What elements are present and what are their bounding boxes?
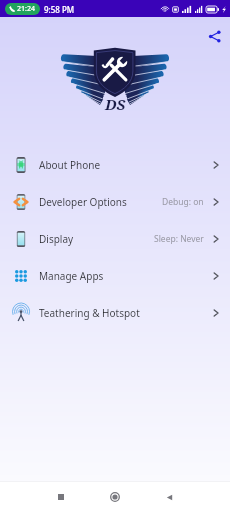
button[interactable]: About Phone xyxy=(0,146,230,183)
button[interactable]: Home xyxy=(99,482,131,512)
button[interactable]: Share xyxy=(203,25,225,47)
button[interactable]: Back xyxy=(153,482,185,512)
staticText: Sleep: Never xyxy=(154,233,204,245)
staticText: Display xyxy=(39,232,74,246)
staticText: 9:58 PM xyxy=(44,4,75,15)
button[interactable]: Recents xyxy=(45,482,77,512)
staticText: DS xyxy=(105,94,126,114)
button[interactable]: Developer Options xyxy=(0,183,230,220)
staticText: Developer Options xyxy=(39,195,127,209)
staticText: Manage Apps xyxy=(39,269,104,283)
staticText: 21:24 xyxy=(17,4,35,14)
staticText: Teathering & Hotspot xyxy=(39,306,140,320)
button[interactable]: Display xyxy=(0,220,230,257)
staticText: Debug: on xyxy=(162,196,204,208)
staticText: About Phone xyxy=(39,158,101,172)
button[interactable]: Manage Apps xyxy=(0,257,230,294)
button[interactable]: Teathering & Hotspot xyxy=(0,294,230,331)
